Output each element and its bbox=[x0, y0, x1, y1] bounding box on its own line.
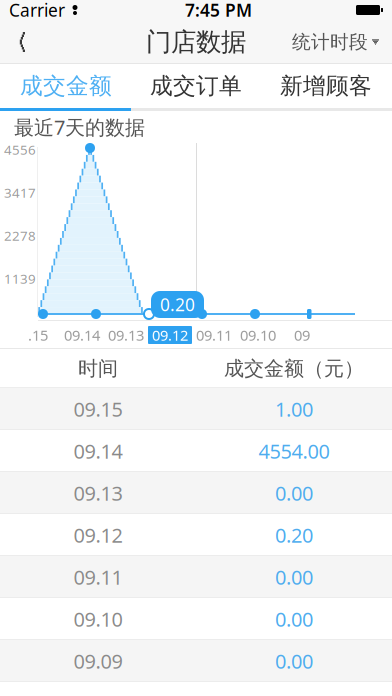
staticText: 09.12 bbox=[73, 522, 122, 548]
staticText: 09.14 bbox=[73, 438, 122, 464]
button[interactable]: 09.13 bbox=[0, 472, 392, 514]
staticText: 7:45 PM bbox=[185, 0, 252, 21]
staticText: .15 bbox=[28, 325, 48, 345]
staticText: 0.00 bbox=[275, 606, 313, 632]
staticText: 09.10 bbox=[73, 606, 122, 632]
staticText: 门店数据 bbox=[146, 26, 246, 57]
staticText: 09.14 bbox=[64, 325, 100, 345]
staticText: 1139 bbox=[4, 270, 36, 287]
staticText: 09.12 bbox=[152, 325, 188, 345]
staticText: 4556 bbox=[4, 141, 36, 158]
staticText: 09.15 bbox=[73, 396, 122, 422]
staticText: 3417 bbox=[4, 184, 36, 201]
staticText: 时间 bbox=[78, 356, 118, 381]
staticText: 0.20 bbox=[275, 522, 313, 548]
button[interactable]: Back bbox=[0, 20, 58, 64]
staticText: 4554.00 bbox=[258, 438, 329, 464]
staticText: 0.00 bbox=[275, 564, 313, 590]
staticText: 09 bbox=[294, 325, 310, 345]
staticText: 09.13 bbox=[73, 480, 122, 506]
staticText: 2278 bbox=[4, 227, 36, 244]
button[interactable]: 新增顾客 bbox=[261, 64, 391, 108]
staticText: 成交订单 bbox=[150, 72, 242, 100]
staticText: 0.00 bbox=[275, 648, 313, 674]
button[interactable]: 成交订单 bbox=[131, 64, 261, 108]
staticText: 1.00 bbox=[275, 396, 313, 422]
button[interactable]: 统计时段 bbox=[279, 20, 392, 64]
staticText: Carrier bbox=[9, 0, 65, 21]
staticText: 09.10 bbox=[240, 325, 276, 345]
button[interactable]: 成交金额 bbox=[1, 64, 131, 108]
button[interactable]: 09.11 bbox=[0, 556, 392, 598]
button[interactable]: 09.10 bbox=[0, 598, 392, 640]
button[interactable]: 09.15 bbox=[0, 388, 392, 430]
button[interactable]: 09.12 bbox=[0, 514, 392, 556]
staticText: 成交金额 bbox=[20, 72, 112, 100]
staticText: 新增顾客 bbox=[280, 72, 372, 100]
button[interactable]: 09.14 bbox=[0, 430, 392, 472]
staticText: 成交金额（元） bbox=[224, 356, 364, 381]
staticText: 0.20 bbox=[160, 293, 195, 316]
staticText: 最近7天的数据 bbox=[14, 114, 145, 140]
staticText: 09.13 bbox=[108, 325, 144, 345]
staticText: 09.11 bbox=[196, 325, 232, 345]
staticText: 09.11 bbox=[73, 564, 122, 590]
staticText: 0.00 bbox=[275, 480, 313, 506]
staticText: 统计时段 bbox=[292, 30, 368, 53]
button[interactable]: 09.09 bbox=[0, 640, 392, 682]
staticText: 09.09 bbox=[73, 648, 122, 674]
